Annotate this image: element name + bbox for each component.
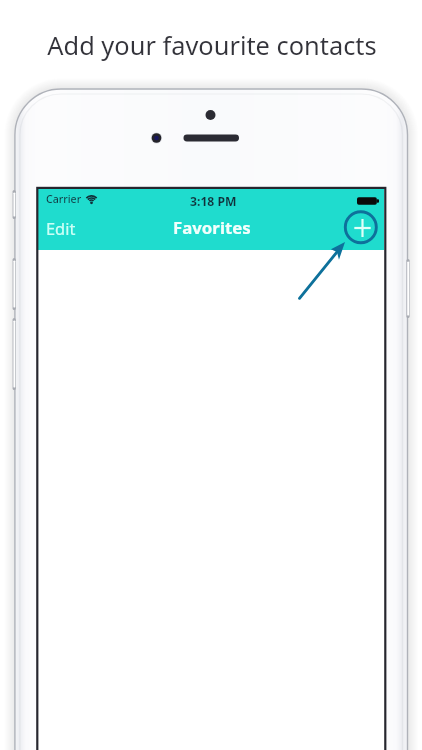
staticText: Add your favourite contacts [1, 28, 422, 63]
staticText: Carrier [46, 192, 82, 206]
staticText: Favorites [173, 216, 251, 239]
button[interactable]: Edit [38, 212, 86, 248]
button[interactable]: Add contact [341, 210, 384, 249]
staticText: Edit [46, 217, 76, 239]
staticText: 3:18 PM [190, 193, 237, 210]
